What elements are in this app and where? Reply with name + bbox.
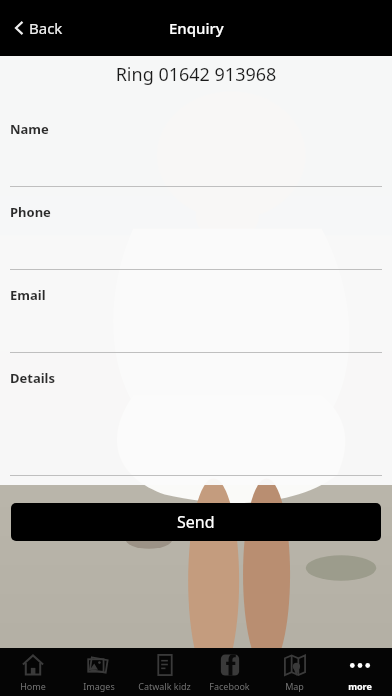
staticText: Catwalk kidz [138,680,191,692]
button[interactable]: Map [262,648,327,696]
staticText: Name [10,120,49,138]
staticText: Ring 01642 913968 [0,62,392,87]
staticText: Phone [10,203,51,221]
button[interactable]: Name [0,104,392,187]
staticText: Back [29,18,63,38]
staticText: Images [83,680,115,692]
staticText: Facebook [209,680,250,692]
staticText: Enquiry [169,18,224,38]
button[interactable]: Images [66,648,132,696]
staticText: Home [20,680,46,692]
button[interactable]: Phone [0,187,392,270]
button[interactable]: Home [0,648,66,696]
staticText: Send [177,511,215,533]
button[interactable]: Email [0,270,392,353]
button[interactable]: Back [10,12,67,44]
button[interactable]: Details [0,353,392,485]
button[interactable]: more [327,648,392,696]
staticText: more [348,680,372,692]
button[interactable]: Catwalk kidz [132,648,197,696]
staticText: Email [10,286,46,304]
button[interactable]: Facebook [197,648,262,696]
button[interactable]: Send [11,503,381,541]
staticText: Details [10,369,55,387]
staticText: Map [285,680,304,692]
